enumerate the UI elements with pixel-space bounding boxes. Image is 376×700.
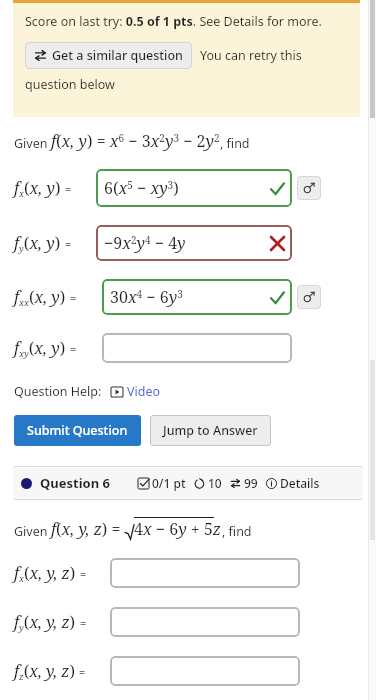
staticText: = xyxy=(80,615,87,630)
staticText: , find xyxy=(220,135,250,152)
staticText: 10 xyxy=(208,475,222,491)
staticText: Video xyxy=(127,383,161,400)
staticText: 0/1 pt xyxy=(152,475,186,491)
staticText: Question 6 xyxy=(40,474,110,492)
staticText: Given xyxy=(14,135,51,152)
staticText: f(x, y, z) = xyxy=(51,518,125,540)
staticText: 4x − 6y + 5z xyxy=(134,518,222,540)
staticText: fy(x, y, z) xyxy=(14,611,76,633)
button[interactable]: Question 6 xyxy=(13,467,363,499)
button[interactable]: Video xyxy=(111,383,161,400)
staticText: Submit Question xyxy=(27,422,128,439)
button[interactable]: −9x2y4 − 4y xyxy=(96,225,292,261)
staticText: , find xyxy=(222,523,252,540)
staticText: Given xyxy=(14,523,51,540)
staticText: Question Help: xyxy=(14,383,102,400)
staticText: 6(x5 − xy3) xyxy=(104,177,179,199)
staticText: Details xyxy=(280,475,320,491)
button[interactable] xyxy=(110,656,300,686)
button[interactable]: 30x4 − 6y3 xyxy=(102,279,292,315)
staticText: 30x4 − 6y3 xyxy=(110,286,183,308)
staticText: Score on last try: 0.5 of 1 pts. See Det… xyxy=(25,13,322,30)
staticText: = xyxy=(65,181,72,196)
staticText: Get a similar question xyxy=(52,47,183,64)
staticText: fxy(x, y) xyxy=(14,337,66,359)
staticText: fz(x, y, z) xyxy=(14,660,75,682)
staticText: question below xyxy=(25,76,115,93)
staticText: You can retry this xyxy=(200,47,302,64)
staticText: = xyxy=(79,664,86,679)
staticText: = xyxy=(70,290,77,305)
button[interactable]: Answer format help xyxy=(297,285,321,309)
staticText: fx(x, y, z) xyxy=(14,562,76,584)
staticText: fxx(x, y) xyxy=(14,286,66,308)
staticText: f(x, y) = x6 − 3x2y3 − 2y2 xyxy=(51,130,220,152)
button[interactable]: Answer format help xyxy=(297,176,321,200)
staticText: = xyxy=(65,236,72,251)
button[interactable]: 6(x5 − xy3) xyxy=(96,169,292,207)
button[interactable]: Submit Question xyxy=(14,415,141,446)
button[interactable] xyxy=(110,558,300,588)
button[interactable] xyxy=(110,607,300,637)
button[interactable]: Jump to Answer xyxy=(150,415,271,446)
staticText: fx(x, y) xyxy=(14,177,61,199)
staticText: fy(x, y) xyxy=(14,232,61,254)
button[interactable] xyxy=(102,333,292,363)
staticText: −9x2y4 − 4y xyxy=(104,232,186,254)
staticText: = xyxy=(80,566,87,581)
button[interactable]: Get a similar question xyxy=(25,42,192,69)
staticText: Jump to Answer xyxy=(163,422,258,439)
staticText: = xyxy=(70,341,77,356)
staticText: 99 xyxy=(244,475,258,491)
